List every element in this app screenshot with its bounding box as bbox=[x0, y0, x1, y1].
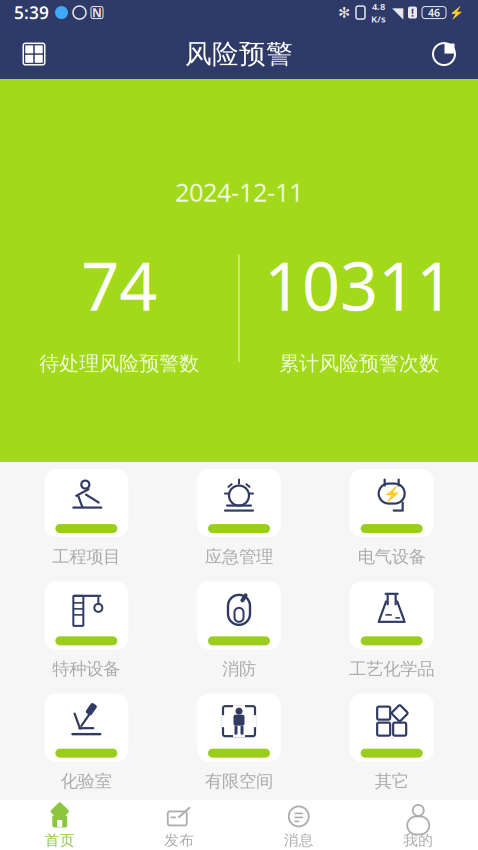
button[interactable]: 有限空间 bbox=[163, 694, 315, 792]
staticText: ! bbox=[411, 5, 414, 20]
button[interactable]: 首页 bbox=[0, 801, 119, 850]
staticText: ⚡ bbox=[383, 485, 401, 502]
staticText: 消防 bbox=[222, 658, 256, 680]
staticText: 应急管理 bbox=[205, 546, 273, 567]
staticText: ✻ bbox=[338, 4, 350, 21]
button[interactable]: 发布 bbox=[119, 801, 239, 850]
staticText: 46 bbox=[428, 5, 440, 20]
staticText: 消息 bbox=[284, 831, 314, 849]
button[interactable]: 工艺化学品 bbox=[315, 581, 468, 680]
staticText: 2024-12-11 bbox=[175, 175, 303, 209]
staticText: 待处理风险预警数 bbox=[39, 351, 199, 376]
staticText: 10311 bbox=[264, 241, 454, 329]
staticText: K/s bbox=[371, 13, 386, 25]
button[interactable]: Statistics bbox=[422, 32, 466, 76]
button[interactable]: Modules bbox=[12, 32, 56, 76]
staticText: 74 bbox=[81, 241, 157, 329]
staticText: 特种设备 bbox=[52, 658, 120, 680]
staticText: 风险预警 bbox=[185, 38, 293, 70]
staticText: 有限空间 bbox=[205, 771, 273, 792]
staticText: 累计风险预警次数 bbox=[279, 351, 439, 376]
staticText: 工程项目 bbox=[52, 546, 120, 567]
staticText: N bbox=[92, 5, 102, 20]
staticText: 发布 bbox=[164, 831, 194, 849]
button[interactable]: 消息 bbox=[239, 801, 358, 850]
button[interactable]: 化验室 bbox=[10, 694, 163, 792]
staticText: 5:39 bbox=[14, 1, 49, 24]
button[interactable]: 其它 bbox=[315, 694, 468, 792]
staticText: 化验室 bbox=[61, 771, 112, 792]
staticText: ◥ bbox=[392, 4, 403, 21]
button[interactable]: 消防 bbox=[163, 581, 315, 680]
button[interactable]: ⚡ bbox=[315, 469, 468, 567]
staticText: 4.8 bbox=[372, 0, 385, 13]
staticText: 工艺化学品 bbox=[349, 658, 434, 680]
staticText: 其它 bbox=[375, 771, 409, 792]
staticText: 首页 bbox=[45, 831, 75, 849]
staticText: ⚡ bbox=[449, 6, 464, 19]
button[interactable]: 特种设备 bbox=[10, 581, 163, 680]
staticText: 电气设备 bbox=[358, 546, 426, 567]
staticText: 我的 bbox=[403, 831, 433, 849]
button[interactable]: 应急管理 bbox=[163, 469, 315, 567]
button[interactable]: 工程项目 bbox=[10, 469, 163, 567]
button[interactable]: 我的 bbox=[358, 801, 478, 850]
